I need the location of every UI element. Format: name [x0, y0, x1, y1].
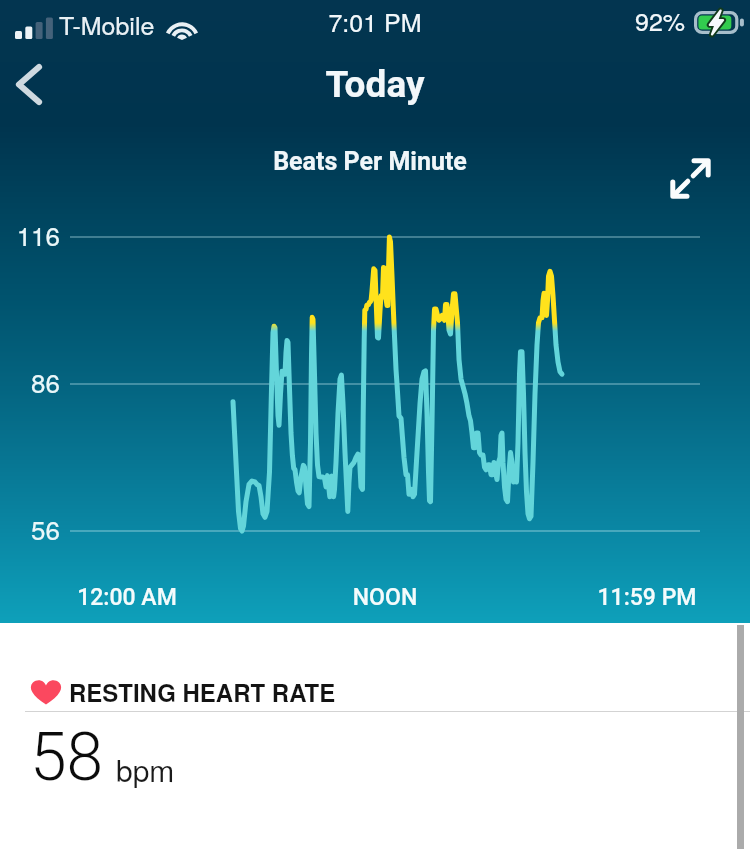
staticText: 12:00 AM: [57, 584, 197, 611]
staticText: Beats Per Minute: [270, 147, 470, 176]
staticText: 58: [30, 719, 104, 796]
staticText: T-Mobile: [59, 6, 155, 42]
staticText: 86: [4, 363, 60, 400]
staticText: 56: [4, 510, 60, 547]
button[interactable]: Expand chart: [650, 138, 730, 218]
staticText: RESTING HEART RATE: [69, 675, 336, 709]
button[interactable]: Back: [0, 52, 56, 116]
staticText: 11:59 PM: [577, 584, 717, 611]
staticText: NOON: [315, 584, 455, 611]
staticText: 7:01 PM: [0, 3, 750, 39]
staticText: 92%: [635, 2, 686, 38]
staticText: 116: [4, 216, 60, 253]
staticText: Today: [0, 63, 750, 106]
staticText: bpm: [116, 748, 175, 791]
